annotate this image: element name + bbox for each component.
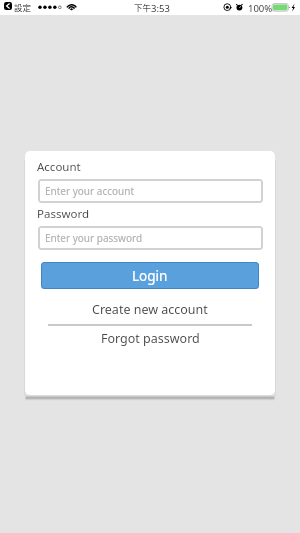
- staticText: Enter your password: [45, 231, 143, 245]
- staticText: 100%: [248, 2, 273, 15]
- button[interactable]: Forgot password: [25, 325, 275, 351]
- button[interactable]: Back: [4, 2, 12, 10]
- staticText: Create new account: [92, 301, 208, 318]
- staticText: Account: [37, 159, 81, 175]
- staticText: 設定: [14, 1, 32, 13]
- staticText: Password: [37, 206, 90, 222]
- button[interactable]: Login: [41, 262, 259, 289]
- staticText: Login: [132, 267, 168, 285]
- staticText: Forgot password: [101, 330, 200, 347]
- staticText: 下午: [134, 1, 152, 13]
- staticText: 3:53: [151, 2, 170, 15]
- button[interactable]: Create new account: [25, 296, 275, 322]
- button[interactable]: Enter your account: [38, 179, 263, 203]
- button[interactable]: Enter your password: [38, 226, 263, 250]
- staticText: Enter your account: [45, 184, 135, 198]
